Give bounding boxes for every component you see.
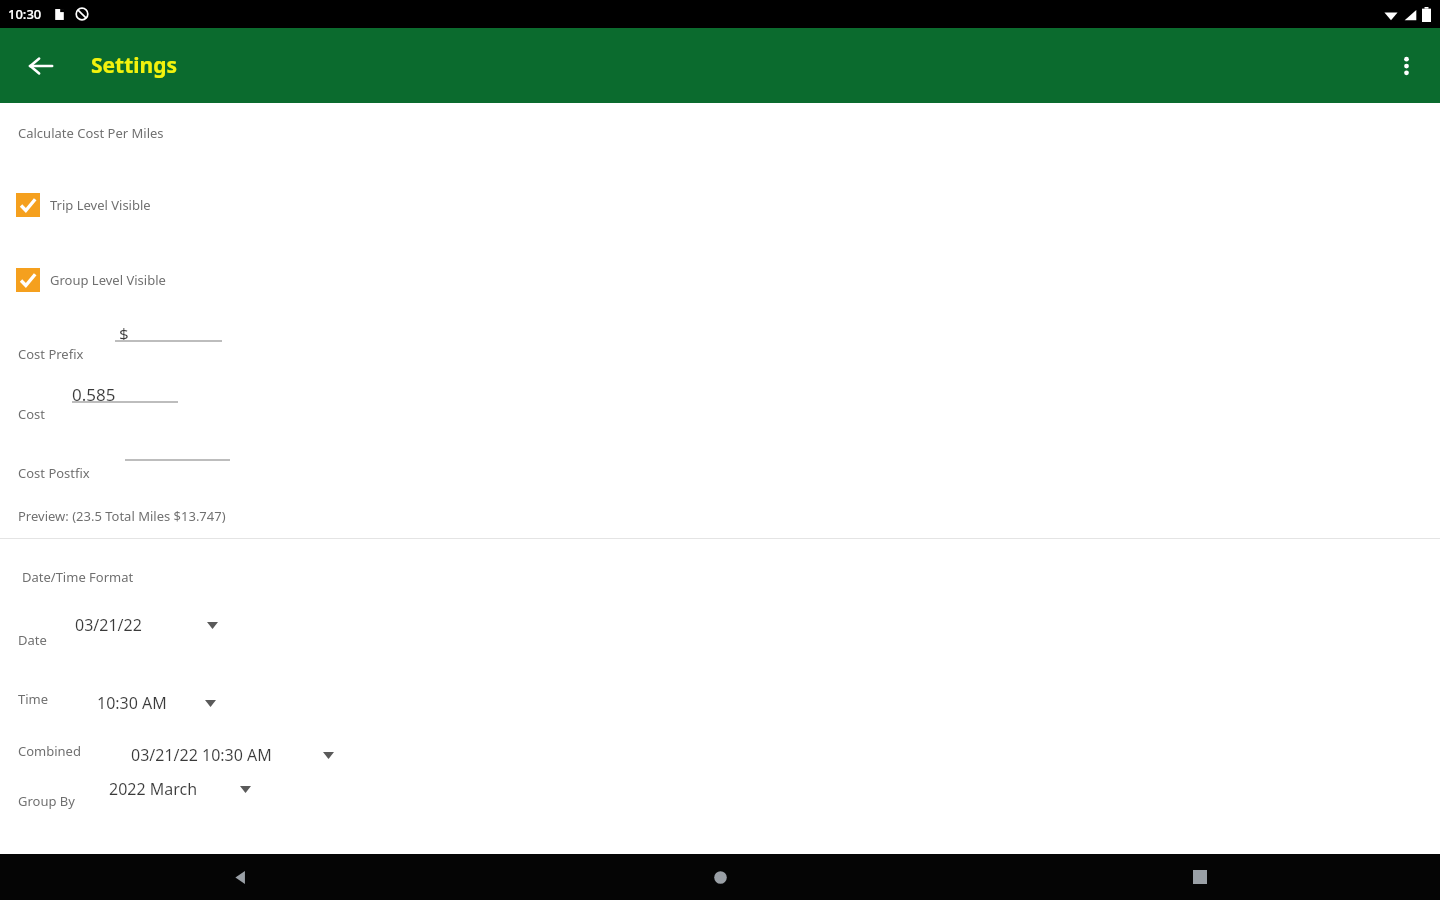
button[interactable]: 03/21/22 <box>75 609 229 641</box>
button[interactable]: 10:30 AM <box>97 687 227 719</box>
button[interactable]: More options <box>1382 42 1430 90</box>
staticText: Cost <box>18 405 46 423</box>
staticText: Preview: (23.5 Total Miles $13.747) <box>18 507 226 525</box>
staticText: Calculate Cost Per Miles <box>18 124 164 142</box>
button[interactable]: 03/21/22 10:30 AM <box>131 739 345 771</box>
staticText: Group Level Visible <box>50 271 166 289</box>
staticText: Time <box>18 690 49 708</box>
staticText: 0.585 <box>72 383 116 406</box>
staticText: Trip Level Visible <box>50 196 151 214</box>
staticText: Combined <box>18 742 81 760</box>
staticText: Settings <box>91 51 178 80</box>
button[interactable]: Recent apps <box>960 854 1440 900</box>
button[interactable]: 2022 March <box>109 773 262 805</box>
button[interactable]: Back <box>16 41 66 91</box>
staticText: Cost Prefix <box>18 345 84 363</box>
button[interactable]: Back <box>0 854 480 900</box>
staticText: Group By <box>18 792 75 810</box>
staticText: 03/21/22 10:30 AM <box>131 744 272 766</box>
staticText: 10:30 AM <box>97 692 167 714</box>
staticText: Date <box>18 631 47 649</box>
button[interactable]: Trip Level Visible <box>16 184 151 226</box>
staticText: $ <box>119 322 129 345</box>
staticText: Date/Time Format <box>22 568 134 586</box>
button[interactable]: Home <box>480 854 960 900</box>
button[interactable]: Group Level Visible <box>16 259 166 301</box>
staticText: 2022 March <box>109 778 198 800</box>
staticText: 10:30 <box>8 5 42 23</box>
staticText: 03/21/22 <box>75 614 142 636</box>
staticText: Cost Postfix <box>18 464 90 482</box>
